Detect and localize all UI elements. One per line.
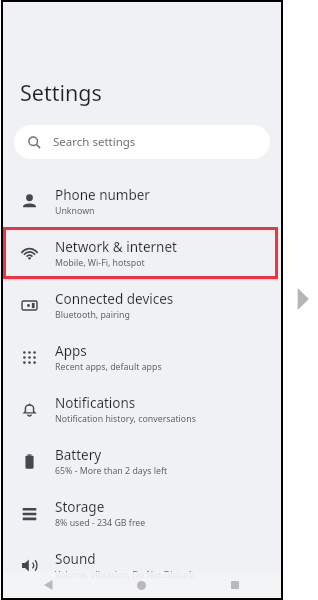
button[interactable]: Connected devices bbox=[3, 279, 281, 331]
button[interactable]: Storage bbox=[3, 487, 281, 539]
staticText: Mobile, Wi-Fi, hotspot bbox=[55, 257, 145, 269]
button[interactable]: Apps bbox=[3, 331, 281, 383]
staticText: Phone number bbox=[55, 186, 150, 204]
staticText: Storage bbox=[55, 498, 105, 516]
button[interactable]: Network & internet bbox=[3, 227, 281, 279]
staticText: Bluetooth, pairing bbox=[55, 309, 130, 321]
button[interactable]: Sound bbox=[3, 539, 281, 591]
button[interactable]: Next bbox=[296, 288, 310, 310]
button[interactable]: Back bbox=[3, 572, 95, 598]
staticText: Recent apps, default apps bbox=[55, 361, 162, 373]
button[interactable]: Phone number bbox=[3, 175, 281, 227]
button[interactable]: Battery bbox=[3, 435, 281, 487]
staticText: Battery bbox=[55, 446, 102, 464]
staticText: Network & internet bbox=[55, 238, 177, 256]
staticText: Connected devices bbox=[55, 290, 174, 308]
staticText: 65% - More than 2 days left bbox=[55, 465, 168, 477]
staticText: Unknown bbox=[55, 205, 95, 217]
staticText: Settings bbox=[20, 78, 102, 107]
staticText: Sound bbox=[55, 550, 96, 568]
staticText: Search settings bbox=[53, 134, 136, 150]
button[interactable]: Recent apps bbox=[188, 572, 281, 598]
staticText: 8% used - 234 GB free bbox=[55, 517, 146, 529]
staticText: Notification history, conversations bbox=[55, 413, 196, 425]
staticText: Apps bbox=[55, 342, 87, 360]
button[interactable]: Notifications bbox=[3, 383, 281, 435]
button[interactable]: Search settings bbox=[14, 125, 270, 159]
staticText: Volume, vibration, Do Not Disturb bbox=[55, 569, 195, 581]
button[interactable]: Home bbox=[95, 572, 188, 598]
staticText: Notifications bbox=[55, 394, 136, 412]
